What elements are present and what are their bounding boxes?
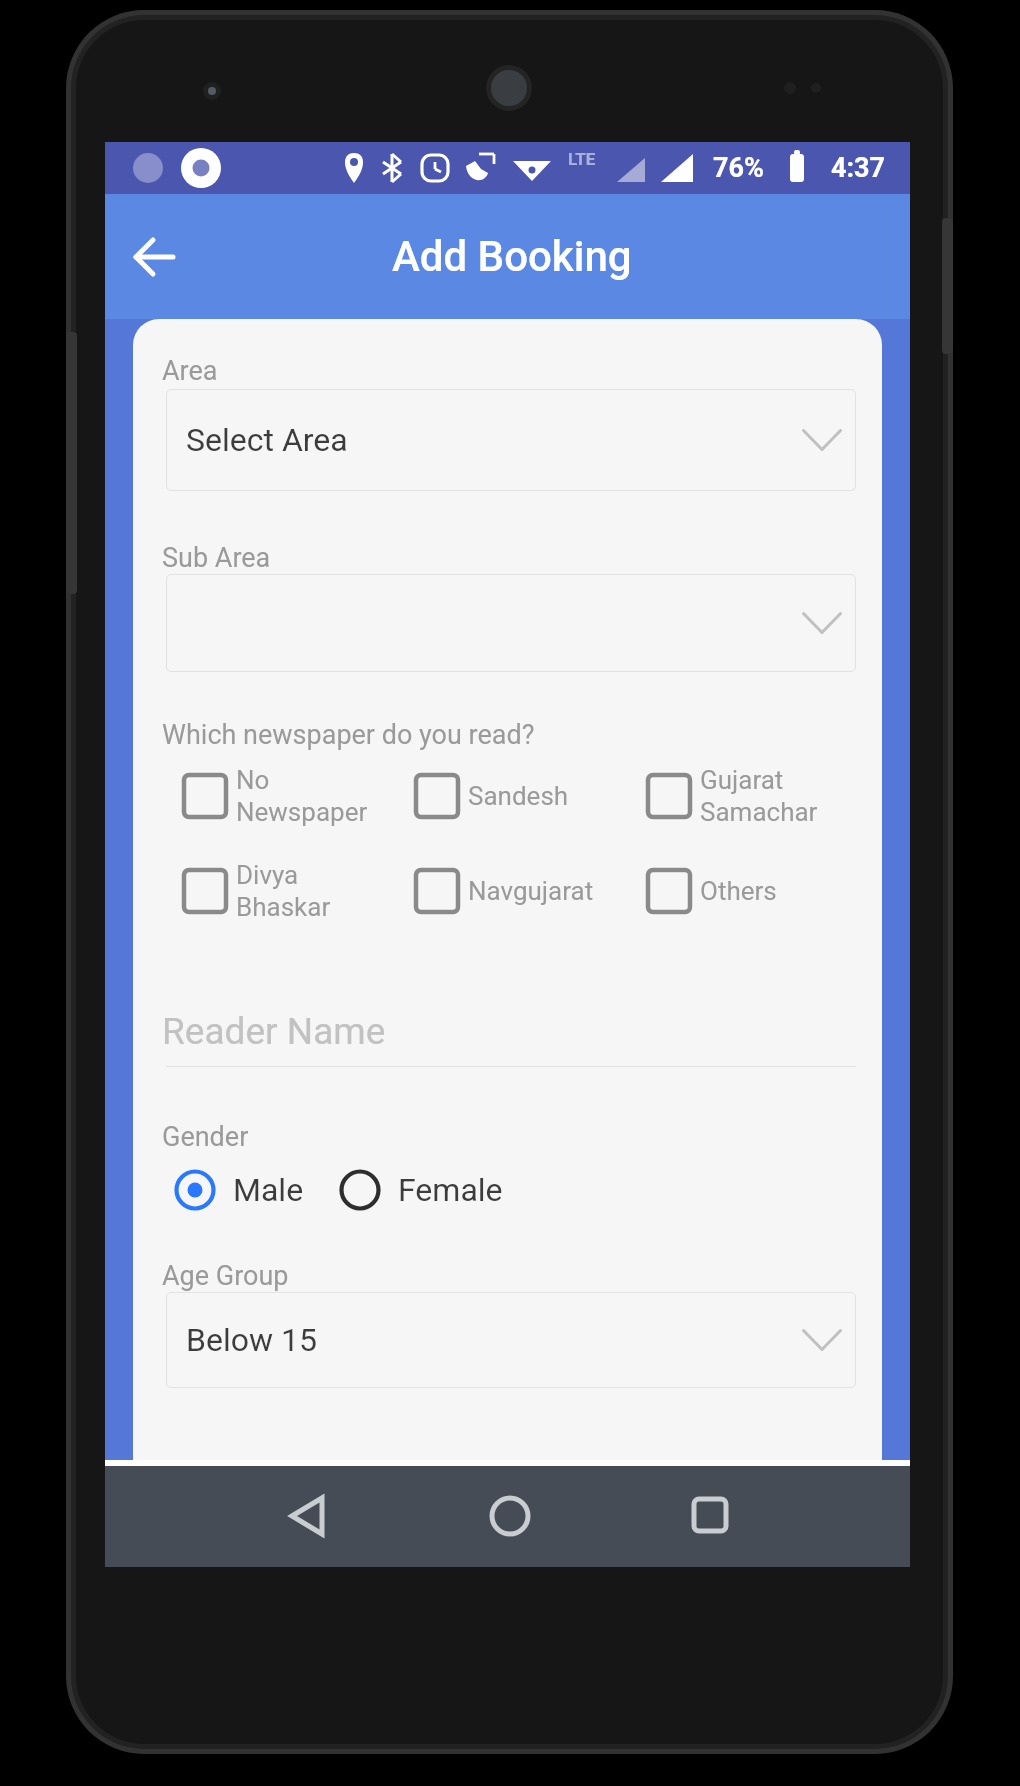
button[interactable]: Navgujarat (412, 866, 612, 916)
staticText: Which newspaper do you read? (162, 719, 535, 751)
staticText: No Newspaper (236, 765, 368, 827)
staticText: Select Area (186, 421, 348, 459)
staticText: LTE (568, 149, 596, 169)
button[interactable]: Navigate up (122, 224, 188, 290)
staticText: 4:37 (831, 152, 886, 184)
button[interactable]: Gujarat Samachar (644, 765, 844, 827)
staticText: Reader Name (162, 1010, 386, 1053)
staticText: Add Booking (392, 232, 632, 281)
button[interactable]: Sandesh (412, 771, 612, 821)
staticText: Female (398, 1171, 503, 1209)
staticText: Area (162, 355, 218, 387)
button[interactable] (166, 574, 856, 672)
staticText: Below 15 (186, 1321, 317, 1359)
button[interactable]: Select Area (166, 389, 856, 491)
button[interactable]: Divya Bhaskar (180, 860, 380, 922)
button[interactable]: Male (173, 1168, 304, 1212)
button[interactable]: Female (338, 1168, 503, 1212)
button[interactable]: Below 15 (166, 1292, 856, 1388)
button[interactable]: Others (644, 866, 844, 916)
button[interactable]: Home (480, 1486, 540, 1546)
staticText: 76% (713, 152, 764, 184)
button[interactable]: No Newspaper (180, 765, 380, 827)
button[interactable]: Recent apps (680, 1485, 740, 1545)
staticText: Sandesh (468, 781, 569, 811)
staticText: Navgujarat (468, 876, 594, 906)
staticText: Age Group (162, 1260, 289, 1292)
staticText: Sub Area (162, 542, 271, 574)
staticText: Divya Bhaskar (236, 860, 331, 922)
button[interactable]: Back (278, 1486, 338, 1546)
staticText: Male (233, 1171, 304, 1209)
staticText: Gender (162, 1121, 249, 1153)
staticText: Gujarat Samachar (700, 765, 818, 827)
staticText: Others (700, 876, 777, 906)
